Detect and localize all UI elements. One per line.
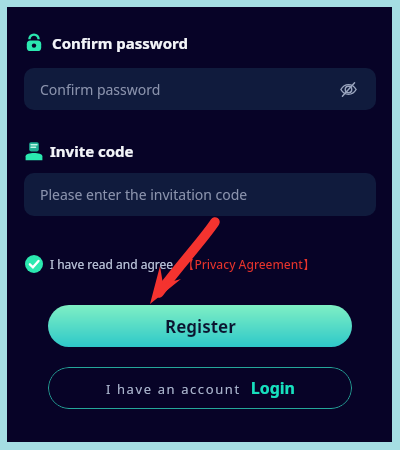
button[interactable]: I have an account Login <box>48 367 352 409</box>
staticText: I have an account Login <box>106 377 295 399</box>
button[interactable]: Register <box>48 305 352 347</box>
staticText: Invite code <box>50 141 134 161</box>
staticText: Please enter the invitation code <box>40 185 248 204</box>
button[interactable]: I have read and agree 【Privacy Agreement… <box>22 250 318 278</box>
button[interactable]: Please enter the invitation code <box>24 173 376 216</box>
staticText: Confirm password <box>52 33 188 53</box>
staticText: I have read and agree 【Privacy Agreement… <box>50 256 315 272</box>
staticText: Register <box>165 315 236 338</box>
staticText: Confirm password <box>40 80 161 99</box>
button[interactable]: Confirm password <box>24 68 376 110</box>
button[interactable]: Toggle password visibility <box>336 77 360 101</box>
